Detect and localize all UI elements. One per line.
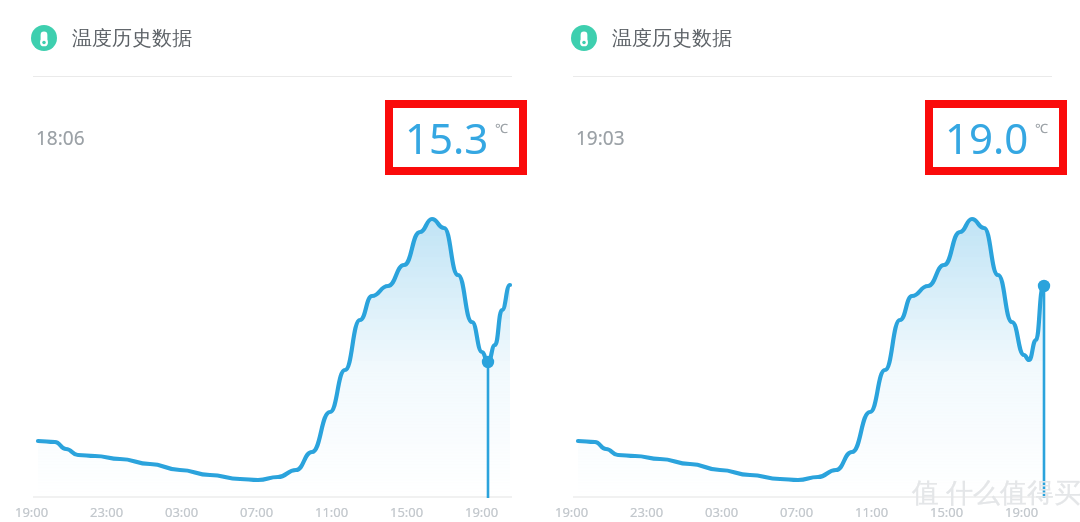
staticText: 18:06	[36, 125, 85, 151]
staticText: 15:00	[390, 503, 424, 521]
staticText: 03:00	[165, 503, 199, 521]
button[interactable]: 19.0	[933, 108, 1059, 167]
staticText: 19:03	[576, 125, 625, 151]
button[interactable]: Temperature	[31, 25, 57, 51]
staticText: 23:00	[90, 503, 124, 521]
staticText: 值 什么值得买	[912, 473, 1080, 510]
staticText: 07:00	[240, 503, 274, 521]
staticText: 11:00	[855, 503, 889, 521]
staticText: 19:00	[555, 503, 589, 521]
staticText: 11:00	[315, 503, 349, 521]
button[interactable]: 15.3	[393, 108, 519, 167]
staticText: 温度历史数据	[612, 26, 732, 51]
staticText: 07:00	[780, 503, 814, 521]
button[interactable]: Temperature	[571, 25, 597, 51]
staticText: 19:00	[465, 503, 499, 521]
staticText: 19.0	[945, 109, 1029, 166]
staticText: 23:00	[630, 503, 664, 521]
staticText: 15.3	[405, 109, 489, 166]
staticText: 15:00	[930, 503, 964, 521]
staticText: ℃	[495, 119, 508, 137]
staticText: 03:00	[705, 503, 739, 521]
staticText: ℃	[1035, 119, 1048, 137]
staticText: 19:00	[15, 503, 49, 521]
staticText: 19:00	[1005, 503, 1039, 521]
staticText: 温度历史数据	[72, 26, 192, 51]
